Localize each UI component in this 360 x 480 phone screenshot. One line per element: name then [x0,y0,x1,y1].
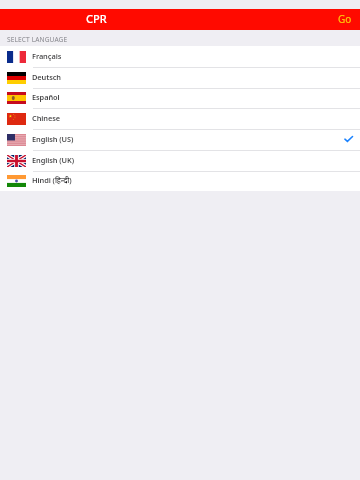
button[interactable]: Hindi (हिन्दी) [0,171,360,191]
staticText: English (US) [32,134,74,144]
button[interactable]: English (UK) [0,150,360,171]
button[interactable]: English (US) [0,129,360,150]
staticText: Go [338,12,352,26]
staticText: Hindi (हिन्दी) [32,175,72,185]
button[interactable]: Chinese [0,108,360,129]
staticText: Español [32,92,60,102]
button[interactable]: Español [0,88,360,108]
staticText: Français [32,51,62,61]
button[interactable]: Go [328,13,360,27]
staticText: English (UK) [32,155,75,165]
button[interactable]: Français [0,46,360,67]
staticText: CPR [86,11,107,26]
staticText: SELECT LANGUAGE [7,35,68,44]
button[interactable]: Deutsch [0,67,360,88]
staticText: Deutsch [32,72,61,82]
staticText: Chinese [32,113,60,123]
